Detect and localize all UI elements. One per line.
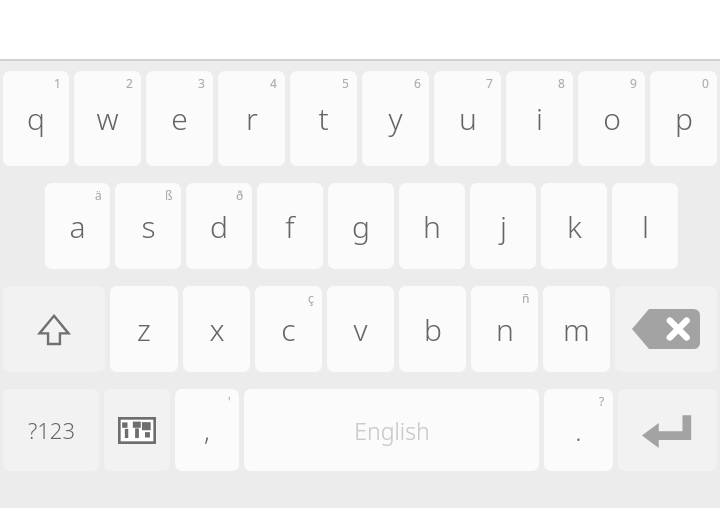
staticText: ? [599,393,605,409]
staticText: 0 [702,75,709,91]
button[interactable]: 7 [434,71,501,166]
button[interactable]: 5 [290,71,357,166]
staticText: 8 [558,75,565,91]
staticText: x [209,309,225,350]
button[interactable]: Enter [618,389,717,471]
staticText: s [141,206,156,247]
staticText: ' [228,393,231,409]
button[interactable]: 8 [506,71,573,166]
button[interactable]: Shift [3,286,105,372]
staticText: ?123 [28,415,75,445]
staticText: ß [165,187,173,203]
staticText: 3 [198,75,205,91]
staticText: , [204,413,210,448]
button[interactable]: 9 [578,71,645,166]
staticText: o [603,98,621,139]
button[interactable]: v [327,286,394,372]
staticText: . [575,413,582,448]
button[interactable]: k [541,183,607,269]
button[interactable]: l [612,183,678,269]
button[interactable]: z [110,286,178,372]
button[interactable]: ' [175,389,239,471]
button[interactable]: ç [255,286,322,372]
staticText: p [675,98,693,139]
staticText: 9 [630,75,637,91]
button[interactable]: m [543,286,610,372]
staticText: y [388,98,403,139]
staticText: f [285,206,295,247]
staticText: ä [95,187,102,203]
button[interactable]: Change language [104,389,170,471]
button[interactable]: ? [544,389,613,471]
button[interactable]: 1 [3,71,69,166]
button[interactable]: 6 [362,71,429,166]
staticText: English [354,415,430,446]
staticText: j [500,206,507,247]
staticText: ç [308,290,314,306]
staticText: z [137,309,151,350]
staticText: t [318,98,329,139]
staticText: k [567,206,582,247]
button[interactable]: f [257,183,323,269]
button[interactable]: ð [186,183,252,269]
staticText: v [353,309,368,350]
staticText: 4 [270,75,277,91]
button[interactable]: j [470,183,536,269]
button[interactable]: ß [115,183,181,269]
staticText: a [69,206,86,247]
staticText: w [96,98,119,139]
button[interactable]: ä [45,183,110,269]
staticText: d [210,206,228,247]
staticText: 7 [486,75,493,91]
staticText: 1 [54,75,61,91]
button[interactable]: x [183,286,250,372]
staticText: q [27,98,45,139]
button[interactable]: g [328,183,394,269]
staticText: 5 [342,75,349,91]
staticText: e [171,98,188,139]
button[interactable]: ?123 [3,389,99,471]
staticText: u [459,98,477,139]
staticText: h [423,206,441,247]
staticText: ð [236,187,244,203]
staticText: n [496,309,514,350]
button[interactable]: 0 [650,71,717,166]
staticText: ñ [522,290,530,306]
button[interactable]: h [399,183,465,269]
button[interactable]: 2 [74,71,141,166]
staticText: m [563,309,590,350]
button[interactable]: b [399,286,466,372]
button[interactable]: ñ [471,286,538,372]
staticText: r [246,98,258,139]
staticText: 2 [126,75,133,91]
staticText: c [281,309,296,350]
staticText: g [352,206,370,247]
staticText: i [536,98,543,139]
staticText: b [424,309,442,350]
button[interactable]: 4 [218,71,285,166]
button[interactable]: Space [244,389,539,471]
staticText: l [642,206,649,247]
staticText: 6 [414,75,421,91]
button[interactable]: 3 [146,71,213,166]
button[interactable]: Backspace [615,286,717,372]
